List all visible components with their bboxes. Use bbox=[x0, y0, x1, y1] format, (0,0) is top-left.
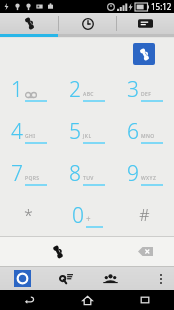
button[interactable]: Search bbox=[44, 267, 88, 290]
button[interactable]: Call history bbox=[133, 43, 155, 65]
staticText: + bbox=[86, 213, 91, 224]
staticText: GHI bbox=[25, 133, 36, 140]
staticText: # bbox=[139, 204, 150, 226]
button[interactable]: Call bbox=[0, 237, 116, 266]
staticText: 6 bbox=[127, 117, 139, 146]
staticText: DEF bbox=[141, 91, 152, 98]
staticText: 1 bbox=[11, 75, 23, 104]
staticText: 7 bbox=[11, 159, 23, 188]
button[interactable]: Recents bbox=[116, 290, 174, 310]
button[interactable]: 4 bbox=[0, 110, 58, 152]
button[interactable]: Home bbox=[58, 290, 116, 310]
button[interactable]: 6 bbox=[116, 110, 174, 152]
staticText: PQRS bbox=[25, 175, 40, 182]
button[interactable]: More options bbox=[148, 267, 174, 290]
button[interactable]: 7 bbox=[0, 152, 58, 194]
staticText: * bbox=[24, 204, 33, 226]
staticText: ABC bbox=[83, 91, 94, 98]
staticText: WXYZ bbox=[141, 175, 157, 182]
staticText: 0 bbox=[72, 201, 84, 230]
button[interactable]: # bbox=[116, 194, 174, 236]
staticText: 8 bbox=[69, 159, 81, 188]
button[interactable]: * bbox=[0, 194, 58, 236]
button[interactable]: 9 bbox=[116, 152, 174, 194]
staticText: 3 bbox=[127, 75, 139, 104]
button[interactable]: Voicemail bbox=[117, 13, 174, 34]
staticText: 2 bbox=[69, 75, 81, 104]
button[interactable]: 5 bbox=[58, 110, 116, 152]
button[interactable]: Dialpad bbox=[0, 267, 44, 290]
button[interactable]: 2 bbox=[58, 69, 116, 110]
staticText: JKL bbox=[83, 133, 92, 140]
button[interactable]: Dialer bbox=[0, 13, 58, 34]
staticText: 15:12 bbox=[151, 1, 172, 12]
button[interactable]: Delete bbox=[116, 237, 174, 266]
staticText: 5 bbox=[69, 117, 81, 146]
button[interactable]: Recents bbox=[59, 13, 116, 34]
button[interactable]: Back bbox=[0, 290, 58, 310]
button[interactable]: 1 bbox=[0, 69, 58, 110]
staticText: 9 bbox=[127, 159, 139, 188]
staticText: 4 bbox=[11, 117, 23, 146]
button[interactable]: Contacts bbox=[88, 267, 132, 290]
button[interactable]: 3 bbox=[116, 69, 174, 110]
button[interactable]: 8 bbox=[58, 152, 116, 194]
button[interactable]: 0 bbox=[58, 194, 116, 236]
staticText: TUV bbox=[83, 175, 94, 182]
staticText: MNO bbox=[141, 133, 155, 140]
